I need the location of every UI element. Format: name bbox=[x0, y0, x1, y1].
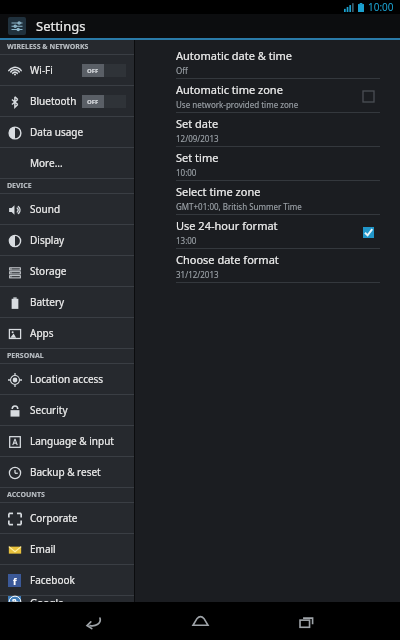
staticText: 10:00 bbox=[368, 0, 394, 14]
button[interactable]: More... bbox=[0, 148, 134, 178]
staticText: OFF bbox=[87, 67, 99, 75]
button[interactable]: Use 24-hour format bbox=[356, 220, 380, 244]
button[interactable]: Automatic date & time bbox=[176, 45, 380, 78]
button[interactable]: Home bbox=[180, 602, 220, 640]
staticText: 12/09/2013 bbox=[176, 133, 219, 144]
staticText: Sound bbox=[30, 202, 61, 216]
button[interactable]: 8 bbox=[0, 596, 134, 602]
staticText: Location access bbox=[30, 372, 104, 386]
button[interactable]: Choose date format bbox=[176, 249, 380, 282]
staticText: Use network-provided time zone bbox=[176, 99, 299, 110]
staticText: Wi-Fi bbox=[30, 63, 53, 77]
staticText: ACCOUNTS bbox=[7, 490, 45, 500]
button[interactable]: Wi-Fi bbox=[0, 55, 134, 85]
staticText: Storage bbox=[30, 264, 67, 278]
button[interactable]: Location access bbox=[0, 364, 134, 394]
staticText: Off bbox=[176, 65, 188, 76]
staticText: Language & input bbox=[30, 434, 114, 448]
staticText: Automatic date & time bbox=[176, 48, 293, 63]
button[interactable]: Data usage bbox=[0, 117, 134, 147]
staticText: Google bbox=[30, 596, 64, 602]
button[interactable]: Storage bbox=[0, 256, 134, 286]
staticText: DEVICE bbox=[7, 181, 32, 191]
button[interactable]: Settings bbox=[0, 14, 400, 38]
staticText: Facebook bbox=[30, 573, 75, 587]
button[interactable]: Set date bbox=[176, 113, 380, 146]
staticText: Settings bbox=[36, 17, 86, 35]
staticText: 8 bbox=[12, 596, 17, 602]
staticText: PERSONAL bbox=[7, 351, 44, 361]
button[interactable]: Language & input bbox=[0, 426, 134, 456]
staticText: Corporate bbox=[30, 511, 78, 525]
staticText: Backup & reset bbox=[30, 465, 101, 479]
staticText: Data usage bbox=[30, 125, 84, 139]
button[interactable]: Battery bbox=[0, 287, 134, 317]
staticText: Choose date format bbox=[176, 252, 279, 267]
staticText: Display bbox=[30, 233, 65, 247]
staticText: Battery bbox=[30, 295, 65, 309]
button[interactable]: Email bbox=[0, 534, 134, 564]
staticText: Automatic time zone bbox=[176, 82, 283, 97]
button[interactable]: Use 24-hour format bbox=[176, 215, 380, 248]
staticText: Set date bbox=[176, 116, 219, 131]
button[interactable]: Back bbox=[73, 602, 113, 640]
button[interactable]: Recents bbox=[287, 602, 327, 640]
staticText: f bbox=[13, 575, 17, 587]
button[interactable]: Security bbox=[0, 395, 134, 425]
button[interactable]: Automatic time zone bbox=[176, 79, 380, 112]
staticText: GMT+01:00, British Summer Time bbox=[176, 201, 302, 212]
button[interactable]: Display bbox=[0, 225, 134, 255]
button[interactable]: Set time bbox=[176, 147, 380, 180]
staticText: Set time bbox=[176, 150, 219, 165]
button[interactable]: Automatic time zone bbox=[356, 84, 380, 108]
staticText: 31/12/2013 bbox=[176, 269, 219, 280]
button[interactable]: f bbox=[0, 565, 134, 595]
staticText: Bluetooth bbox=[30, 94, 77, 108]
button[interactable]: Bluetooth bbox=[0, 86, 134, 116]
staticText: 13:00 bbox=[176, 235, 197, 246]
button[interactable]: Backup & reset bbox=[0, 457, 134, 487]
button[interactable]: Corporate bbox=[0, 503, 134, 533]
staticText: Select time zone bbox=[176, 184, 261, 199]
staticText: More... bbox=[30, 156, 63, 170]
button[interactable]: Apps bbox=[0, 318, 134, 348]
staticText: WIRELESS & NETWORKS bbox=[7, 42, 89, 52]
staticText: Apps bbox=[30, 326, 54, 340]
staticText: Security bbox=[30, 403, 68, 417]
button[interactable]: Sound bbox=[0, 194, 134, 224]
staticText: OFF bbox=[87, 98, 99, 106]
button[interactable]: Select time zone bbox=[176, 181, 380, 214]
staticText: Email bbox=[30, 542, 56, 556]
staticText: 10:00 bbox=[176, 167, 197, 178]
staticText: Use 24-hour format bbox=[176, 218, 278, 233]
